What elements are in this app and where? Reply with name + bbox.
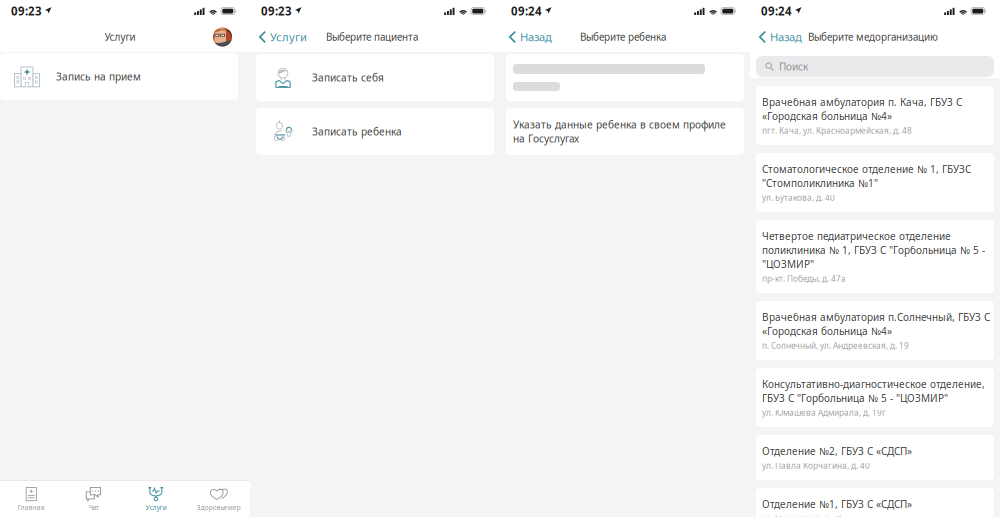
- staticText: "ЦОЗМИР": [762, 257, 814, 271]
- button[interactable]: Четвертое педиатрическое отделение: [756, 220, 994, 293]
- button[interactable]: Услуги: [250, 23, 330, 51]
- button[interactable]: Назад: [500, 23, 580, 51]
- staticText: пгт. Кача, ул. Красноармейская, д. 48: [762, 125, 912, 136]
- button[interactable]: Записать ребенка: [256, 108, 494, 155]
- staticText: Главная: [18, 503, 45, 512]
- staticText: Выберите пациента: [326, 30, 418, 44]
- staticText: Указать данные ребенка в своем профиле: [513, 118, 726, 131]
- staticText: Услуги: [104, 30, 135, 44]
- staticText: ул. Юмашева Адмирала, д. 19г: [762, 407, 886, 418]
- staticText: п. Солнечный, ул. Андреевская, д. 19: [762, 340, 909, 351]
- button[interactable]: Указать данные ребенка в своем профиле: [506, 108, 744, 155]
- staticText: Назад: [770, 29, 802, 45]
- button[interactable]: [506, 54, 744, 101]
- staticText: пр-кт. Победы, д. 47а: [762, 273, 846, 284]
- button[interactable]: Отделение №1, ГБУЗ С «СДСП»: [756, 488, 994, 517]
- staticText: ул. Бутакова, д. 40: [762, 192, 835, 203]
- staticText: Выберите медорганизацию: [808, 30, 938, 44]
- staticText: Стоматологическое отделение № 1, ГБУЗС: [762, 162, 971, 176]
- staticText: Отделение №1, ГБУЗ С «СДСП»: [762, 497, 912, 511]
- button[interactable]: Поиск: [750, 52, 1000, 78]
- staticText: Консультативно-диагностическое отделение…: [762, 377, 985, 391]
- staticText: «Городская больница №4»: [762, 324, 892, 338]
- button[interactable]: Услуги: [125, 481, 187, 517]
- staticText: «Городская больница №4»: [762, 109, 892, 123]
- button[interactable]: Здоровьемер: [187, 481, 250, 517]
- button[interactable]: Записать себя: [256, 54, 494, 101]
- button[interactable]: Врачебная амбулатория п.Солнечный, ГБУЗ …: [756, 301, 994, 360]
- staticText: 09:24: [511, 3, 542, 19]
- staticText: 09:24: [761, 3, 792, 19]
- staticText: Назад: [520, 29, 552, 45]
- staticText: 09:23: [11, 3, 42, 19]
- staticText: Запись на прием: [56, 70, 141, 83]
- staticText: 09:23: [261, 3, 292, 19]
- staticText: Врачебная амбулатория п.Солнечный, ГБУЗ …: [762, 310, 990, 324]
- staticText: поликлиника № 1, ГБУЗ С "Горбольница № 5…: [762, 243, 985, 257]
- button[interactable]: Профиль: [213, 27, 250, 46]
- staticText: Врачебная амбулатория п. Кача, ГБУЗ С: [762, 95, 962, 109]
- staticText: Записать ребенка: [312, 125, 402, 138]
- staticText: на Госуслугах: [513, 132, 579, 145]
- staticText: Записать себя: [312, 71, 384, 84]
- staticText: ул. Павла Корчагина, д. 40: [762, 460, 870, 471]
- button[interactable]: Чат: [62, 481, 125, 517]
- button[interactable]: Врачебная амбулатория п. Кача, ГБУЗ С: [756, 86, 994, 145]
- button[interactable]: Отделение №2, ГБУЗ С «СДСП»: [756, 435, 994, 480]
- staticText: Четвертое педиатрическое отделение: [762, 229, 951, 243]
- staticText: Чат: [89, 503, 99, 512]
- staticText: Услуги: [270, 29, 307, 45]
- button[interactable]: Назад: [750, 23, 830, 51]
- button[interactable]: Запись на прием: [0, 53, 238, 100]
- staticText: Здоровьемер: [197, 503, 241, 512]
- staticText: Отделение №2, ГБУЗ С «СДСП»: [762, 444, 912, 458]
- staticText: Поиск: [779, 60, 808, 73]
- staticText: "Стомполиклиника №1": [762, 176, 878, 190]
- staticText: Услуги: [146, 503, 167, 512]
- button[interactable]: Стоматологическое отделение № 1, ГБУЗС: [756, 153, 994, 212]
- staticText: ГБУЗ С "Горбольница № 5 - "ЦОЗМИР": [762, 391, 948, 405]
- button[interactable]: Главная: [0, 481, 62, 517]
- button[interactable]: Консультативно-диагностическое отделение…: [756, 368, 994, 427]
- staticText: ул. Очаковцев, д. 31: [762, 513, 843, 517]
- staticText: Выберите ребенка: [580, 30, 666, 44]
